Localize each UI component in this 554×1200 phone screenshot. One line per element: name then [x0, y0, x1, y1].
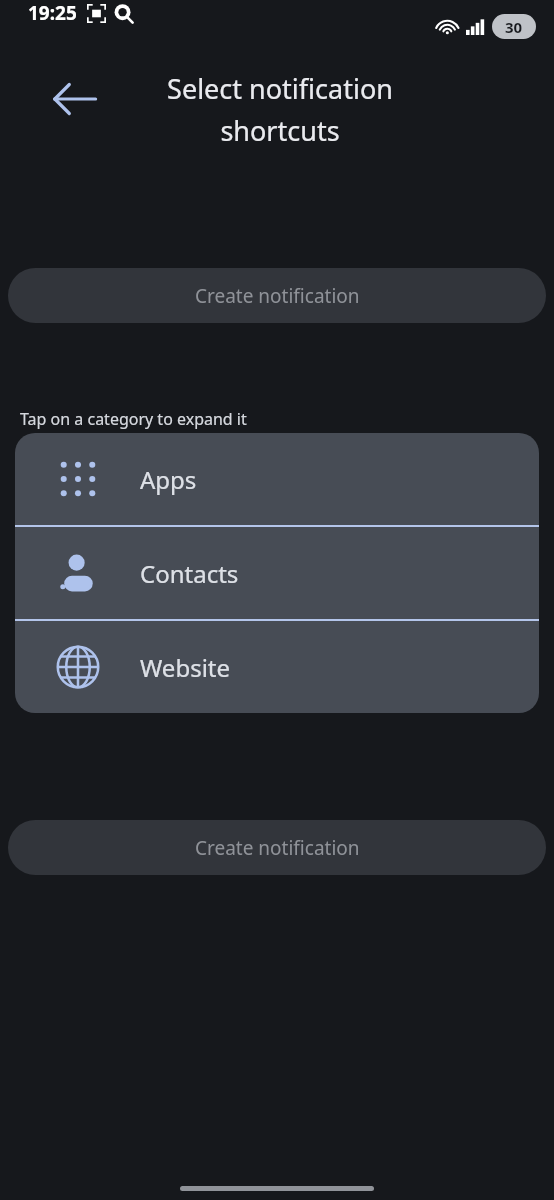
button[interactable]: Website: [15, 621, 539, 713]
staticText: Contacts: [140, 557, 239, 590]
button[interactable]: Apps: [15, 433, 539, 525]
staticText: Website: [140, 651, 231, 684]
staticText: Tap on a category to expand it: [20, 408, 247, 430]
button[interactable]: Contacts: [15, 527, 539, 619]
staticText: Create notification: [195, 283, 360, 309]
staticText: 30: [505, 17, 523, 37]
button[interactable]: Back: [44, 70, 104, 128]
button[interactable]: Create notification: [8, 820, 546, 875]
staticText: 19:25: [28, 0, 77, 26]
staticText: Apps: [140, 463, 197, 496]
button[interactable]: Create notification: [8, 268, 546, 323]
staticText: Create notification: [195, 835, 360, 861]
staticText: Select notification shortcuts: [120, 70, 440, 149]
